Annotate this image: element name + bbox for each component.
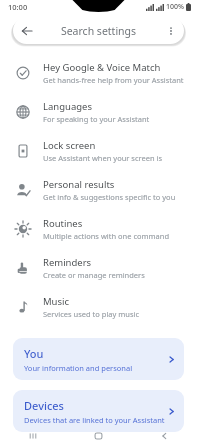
button[interactable]: Back — [131, 432, 197, 440]
staticText: 100% — [166, 2, 184, 12]
staticText: Languages — [43, 100, 92, 113]
button[interactable]: Languages — [0, 92, 197, 131]
staticText: Music — [43, 295, 70, 308]
button[interactable]: You — [13, 338, 184, 380]
staticText: Multiple actions with one command — [43, 231, 169, 241]
button[interactable]: Reminders — [0, 248, 197, 287]
button[interactable]: Personal results — [0, 170, 197, 209]
staticText: Reminders — [43, 256, 92, 269]
staticText: Hey Google & Voice Match — [43, 61, 161, 74]
staticText: Lock screen — [43, 139, 96, 152]
staticText: Get info & suggestions specific to you — [43, 192, 176, 202]
staticText: You — [24, 346, 44, 361]
staticText: For speaking to your Assistant — [43, 114, 150, 124]
staticText: Devices — [24, 398, 64, 413]
staticText: Routines — [43, 217, 83, 230]
button[interactable]: Routines — [0, 209, 197, 248]
staticText: Personal results — [43, 178, 115, 191]
button[interactable]: Lock screen — [0, 131, 197, 170]
staticText: Search settings — [40, 24, 157, 38]
button[interactable]: Devices — [13, 390, 184, 432]
button[interactable]: More options — [157, 17, 184, 44]
staticText: Services used to play music — [43, 309, 140, 319]
staticText: Use Assistant when your screen is locked — [43, 153, 186, 163]
staticText: Create or manage reminders — [43, 270, 145, 280]
button[interactable]: Hey Google & Voice Match — [0, 53, 197, 92]
staticText: Devices that are linked to your Assistan… — [24, 415, 165, 425]
button[interactable]: Recent apps — [0, 432, 65, 440]
button[interactable]: Music — [0, 287, 197, 326]
button[interactable]: Back — [13, 17, 40, 44]
staticText: Your information and personal preference… — [24, 363, 167, 373]
staticText: Get hands-free help from your Assistant — [43, 75, 184, 85]
staticText: 10:00 — [8, 2, 28, 12]
button[interactable]: Home — [65, 432, 131, 440]
